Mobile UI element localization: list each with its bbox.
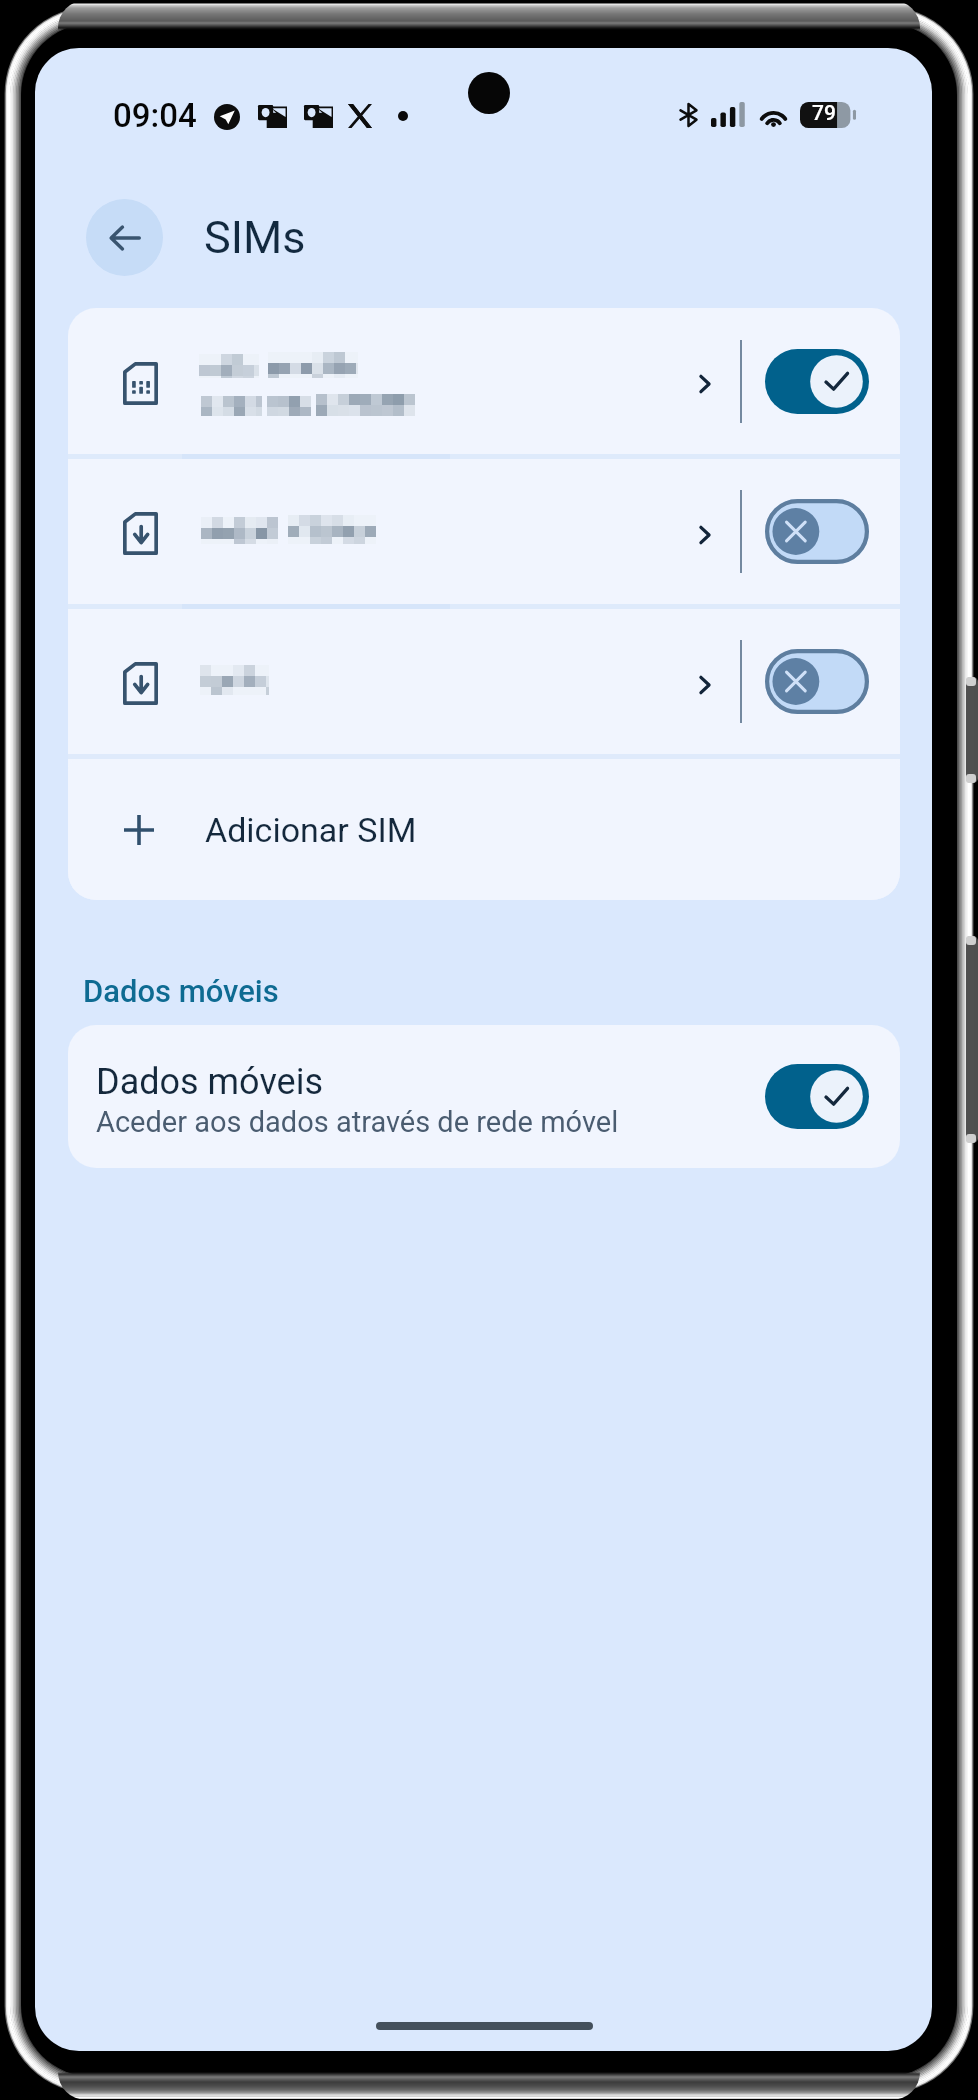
button[interactable]: Back xyxy=(86,199,163,276)
button[interactable]: Enable eSIM xyxy=(68,459,900,604)
staticText: 09:04 xyxy=(113,96,197,135)
button[interactable]: Disable SIM xyxy=(765,349,869,414)
button[interactable]: Dados móveis xyxy=(68,1025,900,1168)
button[interactable]: Mobile data toggle xyxy=(765,1064,869,1129)
button[interactable]: Enable eSIM xyxy=(765,499,869,564)
button[interactable]: Enable eSIM xyxy=(68,609,900,754)
staticText: SIMs xyxy=(204,211,306,264)
button[interactable]: Disable SIM xyxy=(68,308,900,454)
button[interactable]: Adicionar SIM xyxy=(68,759,900,900)
button[interactable]: Enable eSIM xyxy=(765,649,869,714)
staticText: Adicionar SIM xyxy=(205,810,417,850)
staticText: Dados móveis xyxy=(83,973,279,1009)
staticText: Aceder aos dados através de rede móvel xyxy=(96,1105,619,1139)
staticText: Dados móveis xyxy=(96,1061,324,1103)
staticText: 79 xyxy=(812,101,836,126)
